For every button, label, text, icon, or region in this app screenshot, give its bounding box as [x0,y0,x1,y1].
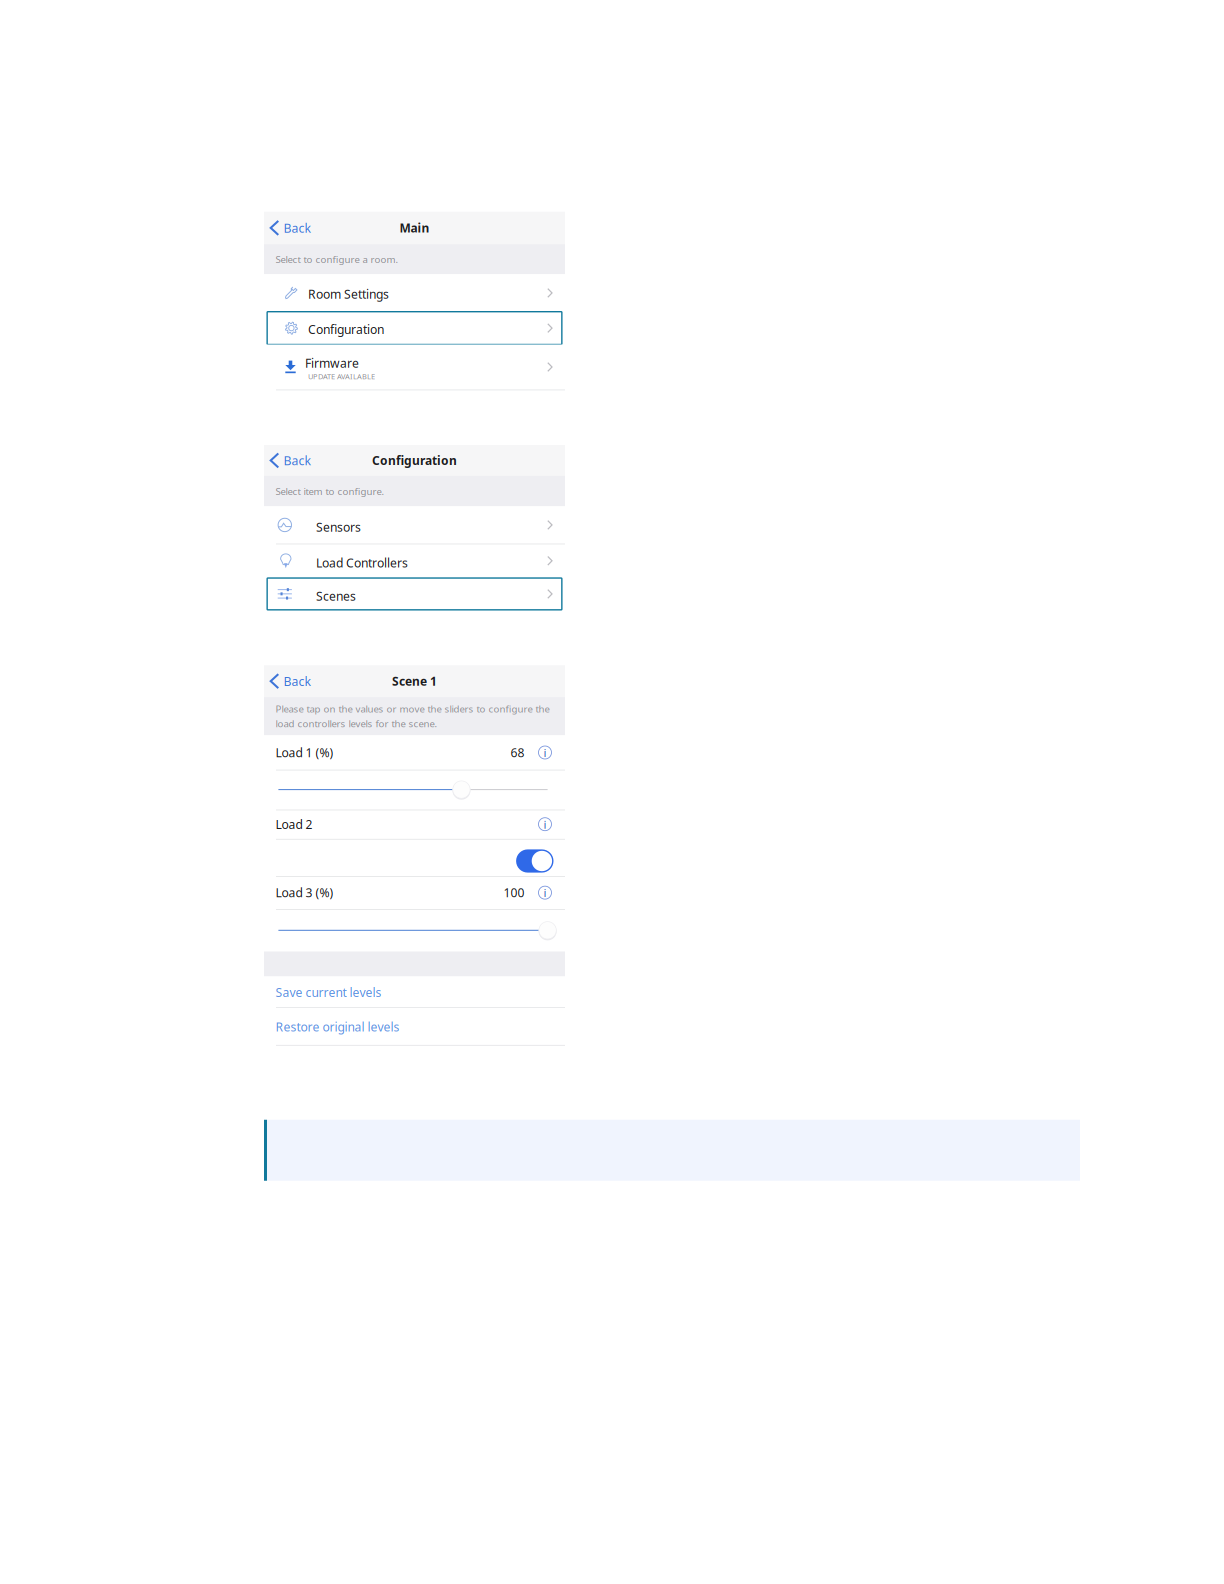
staticText: Select to configure a room. [275,253,398,266]
staticText: Restore original levels [275,1019,399,1035]
staticText: i [543,745,546,760]
staticText: Sensors [316,519,361,535]
staticText: Scenes [316,588,356,604]
staticText: 68 [510,744,524,761]
button[interactable]: Back [264,212,317,244]
staticText: Load 1 (%) [275,744,333,761]
staticText: Back [283,452,311,469]
staticText: Save current levels [275,984,381,1000]
staticText: Load 3 (%) [275,884,333,901]
staticText: Scene 1 [392,673,437,689]
staticText: 100 [503,884,524,901]
button[interactable]: Room Settings [264,274,565,312]
staticText: Back [283,219,311,236]
button[interactable]: Load 2 toggle [516,849,553,873]
button[interactable]: Save current levels [264,976,565,1008]
staticText: Please tap on the values or move the sli… [275,702,549,715]
staticText: Firmware [305,355,359,371]
button[interactable]: Back [264,665,317,697]
staticText: Back [283,673,311,689]
staticText: load controllers levels for the scene. [275,717,437,730]
button[interactable]: Load Controllers [264,543,565,578]
button[interactable]: Restore original levels [264,1008,565,1046]
button[interactable]: Scenes [264,578,565,610]
staticText: i [543,885,546,900]
button[interactable]: Info [538,886,552,900]
button[interactable]: Firmware [264,344,565,389]
button[interactable]: Info [538,745,552,759]
staticText: Load Controllers [316,554,408,571]
staticText: Select item to configure. [275,485,384,498]
button[interactable]: Back [264,445,317,476]
staticText: Main [399,220,429,236]
button[interactable]: Sensors [264,506,565,543]
staticText: Room Settings [308,286,389,302]
staticText: UPDATE AVAILABLE [308,371,375,382]
staticText: Configuration [308,321,384,337]
staticText: Load 2 [275,816,312,832]
button[interactable]: Configuration [264,312,565,344]
staticText: Configuration [372,452,457,469]
button[interactable]: Info [538,817,552,831]
staticText: i [543,816,546,832]
